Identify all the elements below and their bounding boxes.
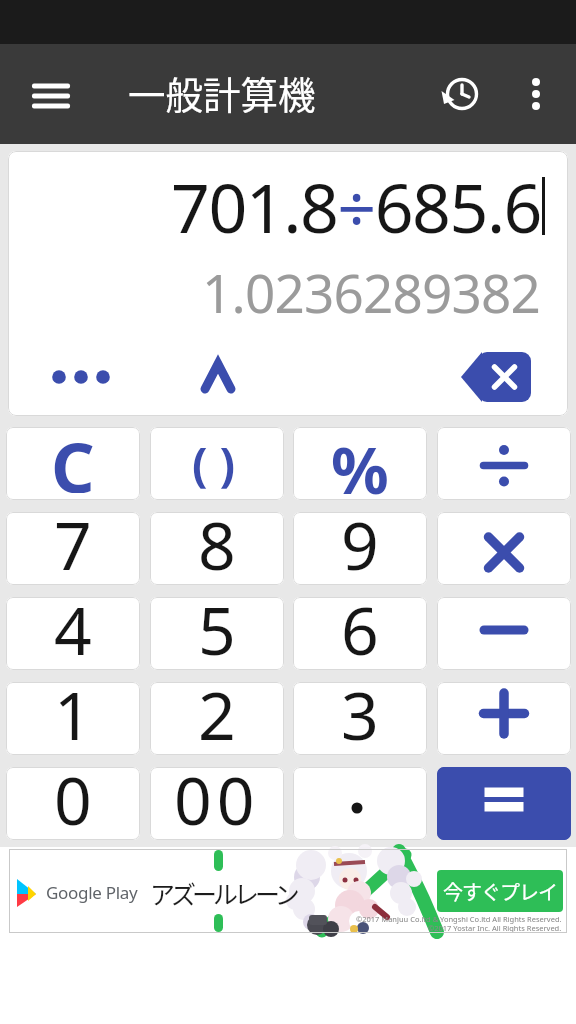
- button[interactable]: [434, 66, 490, 122]
- button[interactable]: (): [150, 427, 284, 500]
- staticText: 一般計算機: [128, 65, 316, 119]
- button[interactable]: Google Play: [9, 849, 567, 933]
- staticText: 5: [198, 597, 236, 657]
- button[interactable]: 00: [150, 767, 284, 840]
- button[interactable]: [512, 66, 560, 122]
- staticText: 4: [54, 597, 92, 657]
- staticText: 00: [174, 767, 260, 827]
- button[interactable]: %: [293, 427, 427, 500]
- button[interactable]: 0: [6, 767, 140, 840]
- button[interactable]: 7: [6, 512, 140, 585]
- staticText: 0: [54, 767, 92, 827]
- button[interactable]: 8: [150, 512, 284, 585]
- staticText: 9: [341, 512, 379, 572]
- button[interactable]: C: [6, 427, 140, 500]
- button[interactable]: [437, 682, 571, 755]
- staticText: 7: [54, 512, 92, 572]
- button[interactable]: 9: [293, 512, 427, 585]
- button[interactable]: [456, 341, 548, 413]
- button[interactable]: 3: [293, 682, 427, 755]
- button[interactable]: [179, 346, 255, 408]
- staticText: (): [192, 432, 248, 495]
- staticText: 1: [54, 682, 92, 742]
- button[interactable]: [437, 597, 571, 670]
- button[interactable]: 2: [150, 682, 284, 755]
- button[interactable]: [38, 346, 138, 408]
- staticText: 2: [198, 682, 236, 742]
- button[interactable]: [437, 512, 571, 585]
- button[interactable]: [437, 427, 571, 500]
- staticText: 1.0236289382: [202, 256, 541, 328]
- staticText: ©2017 Yostar Inc. All Rights Reserved.: [428, 923, 562, 933]
- button[interactable]: 6: [293, 597, 427, 670]
- button[interactable]: [293, 767, 427, 840]
- staticText: %: [331, 427, 389, 499]
- staticText: アズールレーン: [150, 875, 296, 911]
- button[interactable]: 5: [150, 597, 284, 670]
- staticText: 8: [198, 512, 236, 572]
- button[interactable]: [437, 767, 571, 840]
- staticText: ©2017 Manjuu Co.ltd & Yongshi Co.ltd All…: [356, 914, 562, 924]
- staticText: 今すぐプレイ: [443, 877, 557, 906]
- button[interactable]: 4: [6, 597, 140, 670]
- staticText: C: [51, 427, 95, 493]
- staticText: 6: [341, 597, 379, 657]
- button[interactable]: 1: [6, 682, 140, 755]
- staticText: 3: [341, 682, 379, 742]
- button[interactable]: 今すぐプレイ: [437, 870, 563, 912]
- button[interactable]: [18, 66, 84, 122]
- staticText: 701.8÷685.6: [171, 160, 542, 253]
- staticText: Google Play: [46, 881, 138, 904]
